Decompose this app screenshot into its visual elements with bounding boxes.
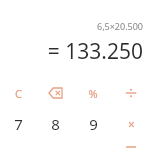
button[interactable]: C (0, 82, 37, 104)
button[interactable]: × (112, 113, 150, 135)
staticText: 8 (51, 114, 60, 134)
staticText: % (88, 86, 98, 101)
button[interactable]: Divide (112, 82, 150, 104)
button[interactable]: % (74, 82, 112, 104)
button[interactable]: 7 (0, 113, 37, 135)
button[interactable]: 8 (37, 113, 74, 135)
button[interactable]: 9 (74, 113, 112, 135)
staticText: C (15, 86, 22, 101)
staticText: 6,5×20.500 (96, 20, 143, 32)
staticText: = 133.250 (47, 37, 143, 66)
button[interactable]: Backspace (37, 82, 74, 104)
staticText: 9 (89, 114, 98, 134)
staticText: × (128, 116, 135, 132)
button[interactable]: Minus (112, 144, 150, 150)
staticText: 7 (14, 114, 23, 134)
